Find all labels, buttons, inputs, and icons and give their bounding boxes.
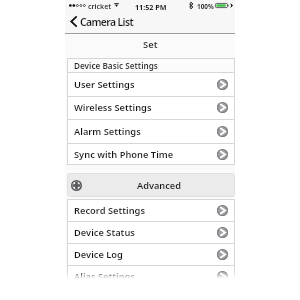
- button[interactable]: User Settings: [67, 72, 235, 96]
- other: Add: [71, 180, 82, 191]
- staticText: cricket: [88, 2, 112, 12]
- staticText: Advanced: [137, 179, 181, 192]
- staticText: Set: [143, 38, 158, 51]
- button[interactable]: Camera List: [65, 11, 235, 34]
- staticText: Device Basic Settings: [74, 60, 158, 71]
- staticText: Device Status: [74, 226, 135, 239]
- button[interactable]: Alias Settings: [67, 265, 235, 287]
- staticText: Wireless Settings: [74, 101, 152, 114]
- staticText: Record Settings: [74, 204, 145, 217]
- button[interactable]: Wireless Settings: [67, 96, 235, 119]
- button[interactable]: Alarm Settings: [67, 119, 235, 143]
- staticText: Alarm Settings: [74, 125, 141, 138]
- button[interactable]: Device Log: [67, 243, 235, 265]
- staticText: 100%: [197, 2, 214, 11]
- button[interactable]: Record Settings: [67, 199, 235, 221]
- staticText: 11:52 PM: [135, 2, 167, 12]
- staticText: Alias Settings: [74, 270, 136, 283]
- staticText: Sync with Phone Time: [74, 148, 174, 161]
- button[interactable]: Device Status: [67, 221, 235, 243]
- staticText: Device Log: [74, 248, 123, 261]
- button[interactable]: Add: [67, 173, 235, 197]
- staticText: Camera List: [80, 15, 133, 29]
- staticText: User Settings: [74, 78, 135, 91]
- button[interactable]: Sync with Phone Time: [67, 143, 235, 165]
